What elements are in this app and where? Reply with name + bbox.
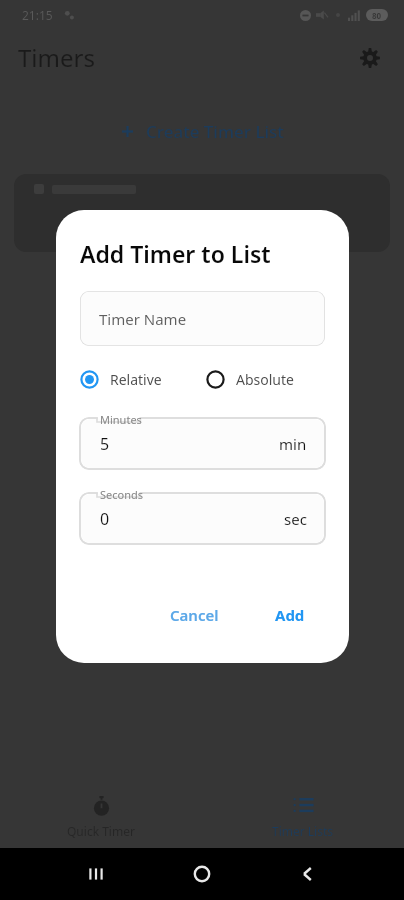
staticText: sec [284,509,307,529]
button[interactable]: Relative [80,370,162,389]
staticText: Add Timer to List [80,238,271,269]
staticText: Cancel [170,605,219,625]
staticText: Absolute [236,370,294,389]
button[interactable]: Cancel [164,597,225,633]
staticText: Quick Timer [67,823,135,839]
button[interactable]: Add [269,597,311,633]
staticText: Timer Lists [272,823,334,839]
staticText: Timer Name [99,309,187,329]
button[interactable]: Timer Lists [202,786,404,848]
staticText: Minutes [100,412,142,427]
staticText: Timers [18,41,95,74]
staticText: 0 [100,508,110,530]
staticText: Create Timer List [146,120,284,143]
button[interactable]: Settings [348,36,392,80]
staticText: 21:15 [22,7,53,23]
button[interactable] [14,174,390,252]
button[interactable]: Create Timer List [0,109,404,153]
staticText: 80 [372,10,382,21]
staticText: Relative [110,370,162,389]
staticText: 5 [100,433,110,455]
button[interactable]: Timer Name [80,291,325,346]
staticText: Seconds [100,487,144,502]
staticText: min [279,434,307,454]
button[interactable]: Absolute [206,370,294,389]
staticText: Add [275,605,305,625]
